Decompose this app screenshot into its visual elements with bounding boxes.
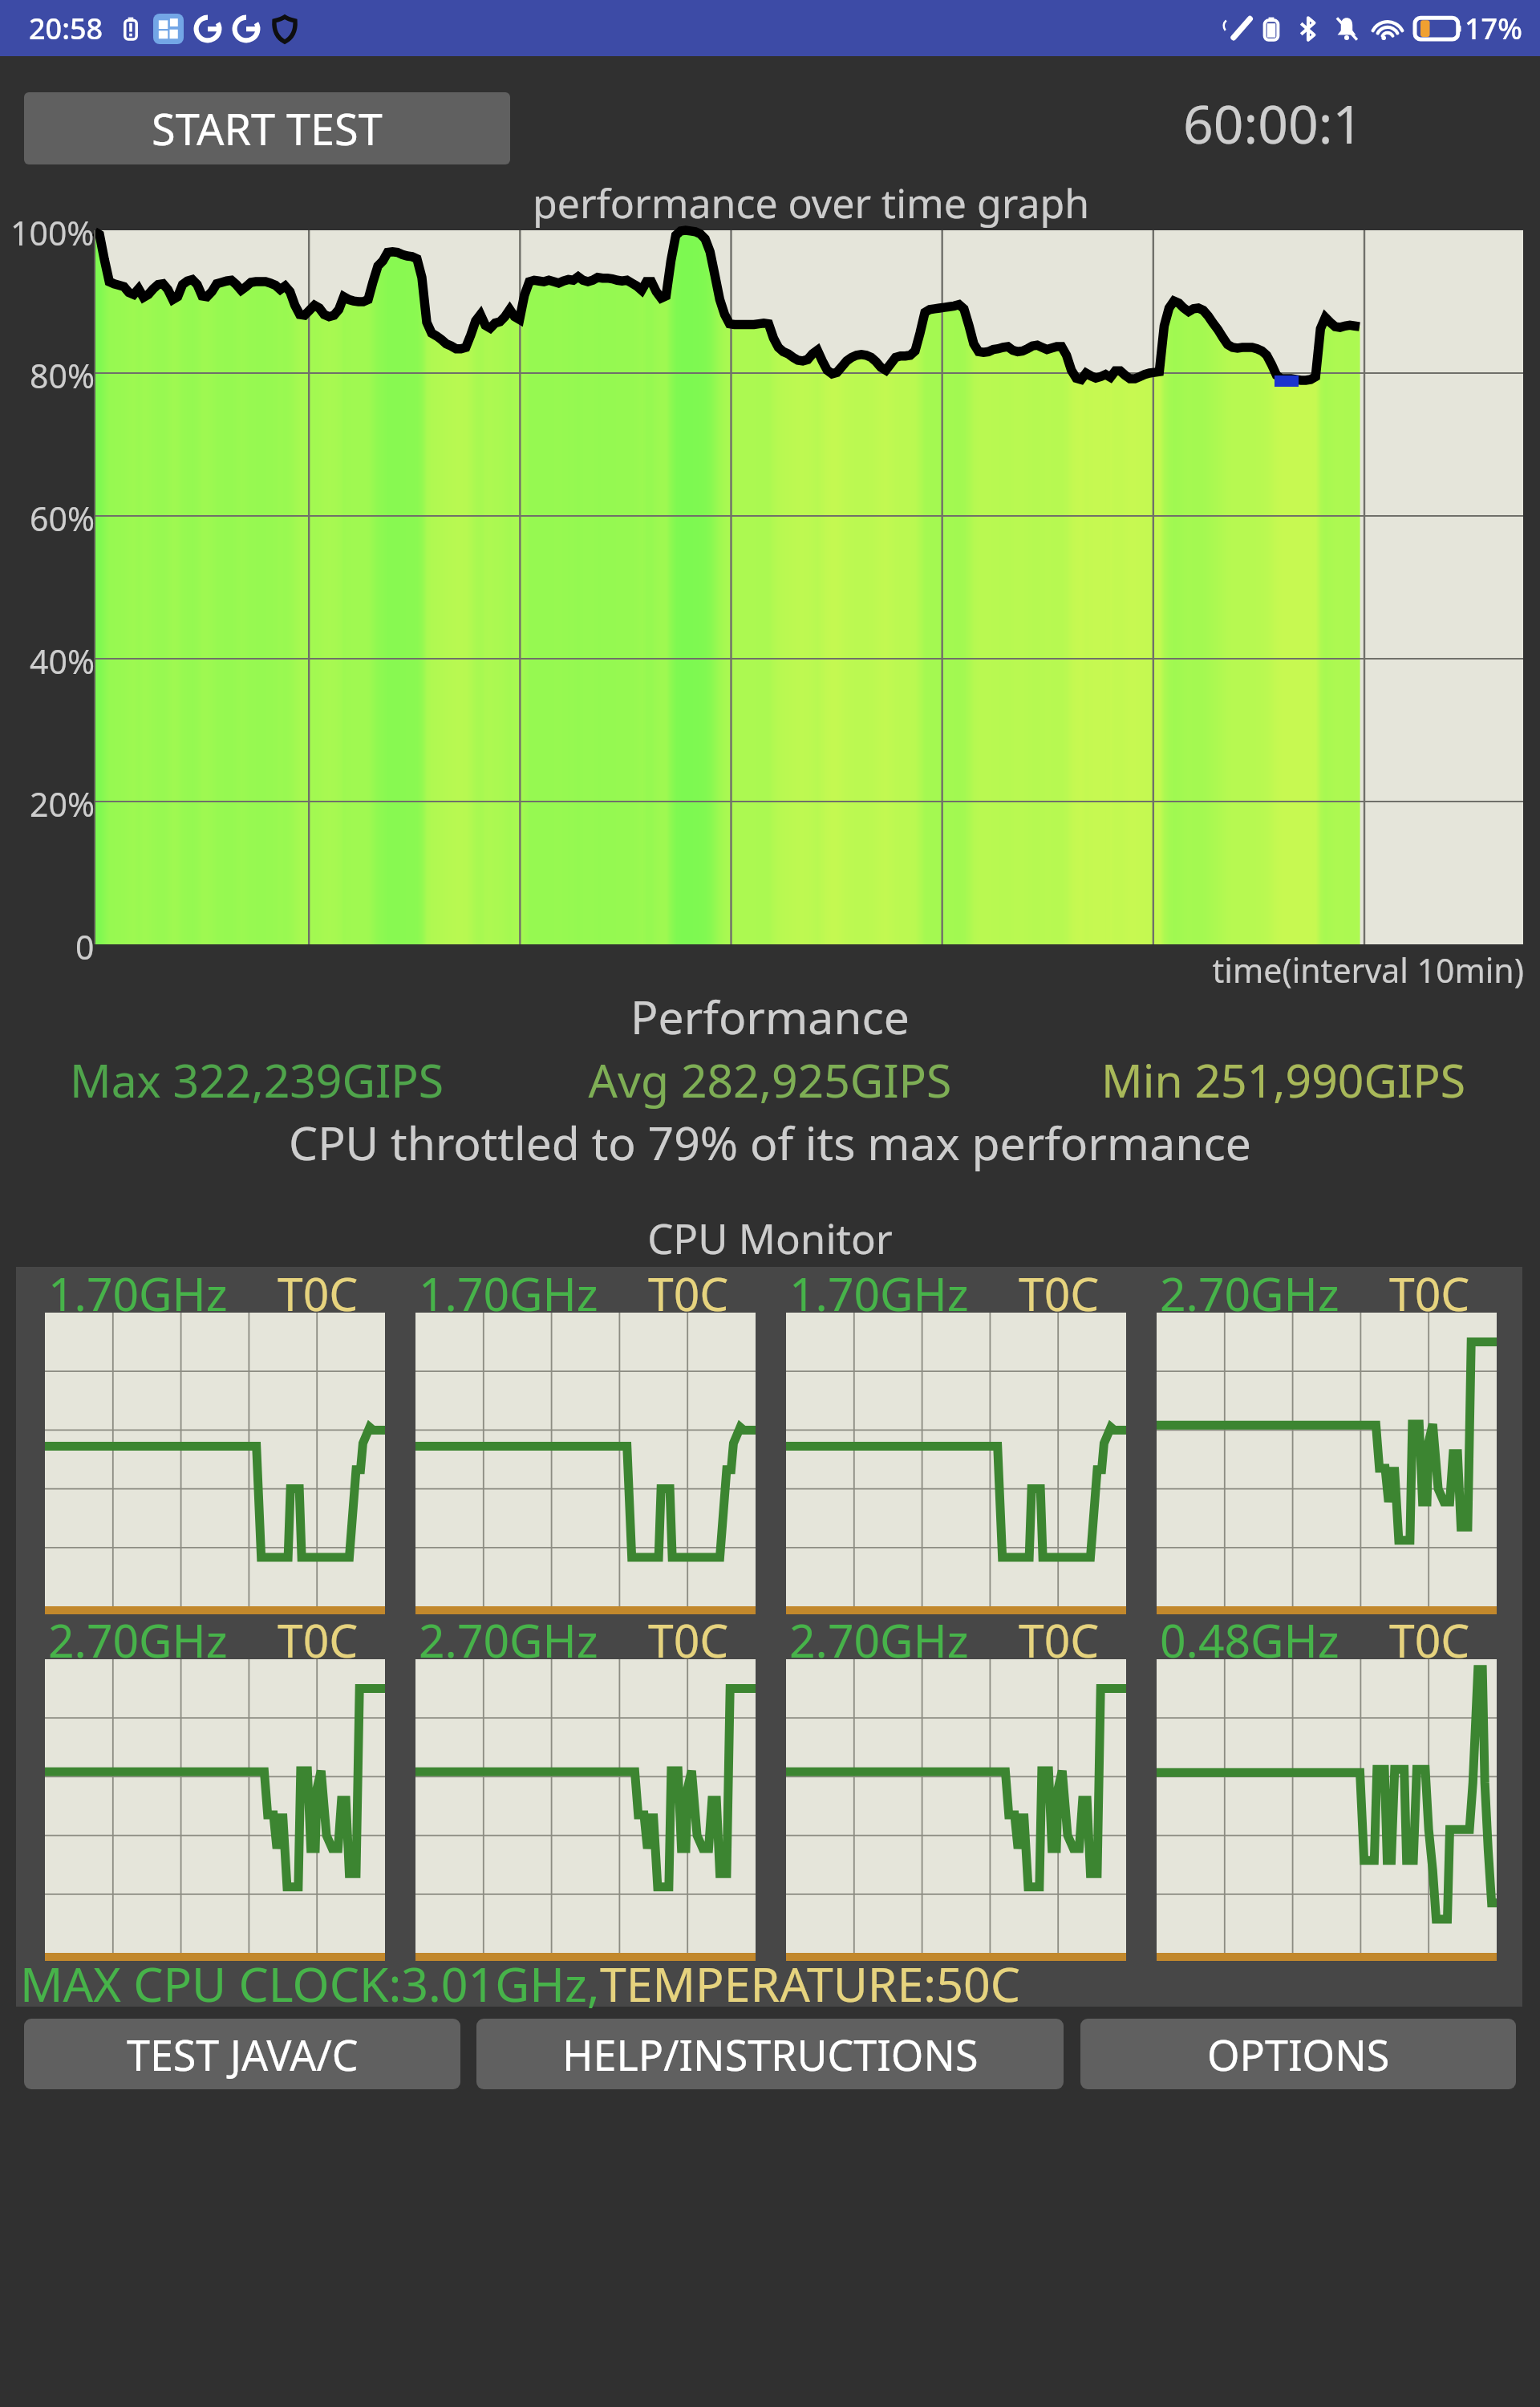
staticText: 20% xyxy=(30,781,95,826)
staticText: Avg 282,925GIPS xyxy=(513,1049,1027,1111)
staticText: CPU Monitor xyxy=(0,1210,1540,1265)
staticText: 2.70GHz xyxy=(789,1609,969,1671)
staticText: 0.48GHz xyxy=(1160,1609,1339,1671)
staticText: 60% xyxy=(30,496,95,541)
staticText: 2.70GHz xyxy=(1160,1262,1339,1325)
staticText: 0 xyxy=(75,924,95,969)
staticText: T0C xyxy=(1019,1262,1100,1325)
button[interactable]: OPTIONS xyxy=(1080,2019,1516,2089)
button[interactable]: HELP/INSTRUCTIONS xyxy=(476,2019,1064,2089)
staticText: HELP/INSTRUCTIONS xyxy=(562,2026,979,2083)
staticText: 1.70GHz xyxy=(419,1262,598,1325)
staticText: TEMPERATURE:50C xyxy=(600,1951,1020,2015)
staticText: performance over time graph xyxy=(533,176,1090,230)
staticText: time(interval 10min) xyxy=(0,948,1524,992)
staticText: 80% xyxy=(30,353,95,398)
staticText: 2.70GHz xyxy=(419,1609,598,1671)
staticText: 20:58 xyxy=(29,9,103,48)
staticText: START TEST xyxy=(152,99,383,158)
staticText: 17% xyxy=(1465,9,1522,48)
staticText: 40% xyxy=(30,639,95,684)
button[interactable]: TEST JAVA/C xyxy=(24,2019,460,2089)
staticText: Max 322,239GIPS xyxy=(0,1049,513,1111)
staticText: T0C xyxy=(1389,1262,1470,1325)
button[interactable]: START TEST xyxy=(24,92,510,164)
staticText: T0C xyxy=(648,1609,729,1671)
staticText: MAX CPU CLOCK:3.01GHz, xyxy=(20,1951,600,2015)
staticText: Min 251,990GIPS xyxy=(1027,1049,1540,1111)
staticText: 60:00:1 xyxy=(1183,87,1364,159)
staticText: OPTIONS xyxy=(1207,2026,1390,2083)
staticText: 100% xyxy=(10,210,95,255)
staticText: TEST JAVA/C xyxy=(127,2026,359,2083)
staticText: CPU throttled to 79% of its max performa… xyxy=(0,1111,1540,1174)
staticText: T0C xyxy=(278,1262,359,1325)
staticText: 1.70GHz xyxy=(789,1262,969,1325)
staticText: 2.70GHz xyxy=(48,1609,228,1671)
staticText: T0C xyxy=(1019,1609,1100,1671)
staticText: T0C xyxy=(278,1609,359,1671)
staticText: T0C xyxy=(1389,1609,1470,1671)
staticText: Performance xyxy=(0,985,1540,1048)
staticText: 1.70GHz xyxy=(48,1262,228,1325)
staticText: T0C xyxy=(648,1262,729,1325)
